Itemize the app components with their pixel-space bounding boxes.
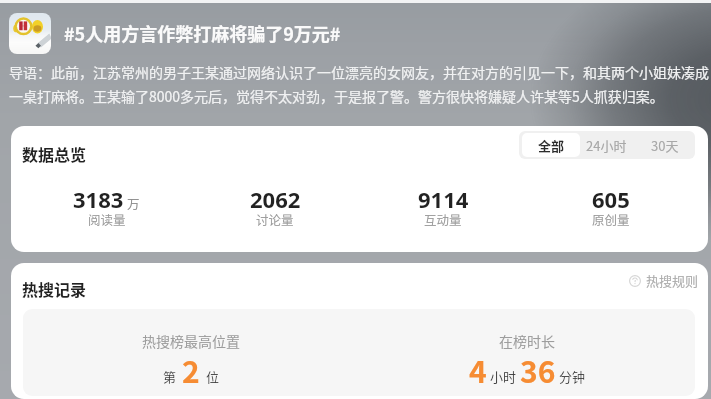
staticText: 605 <box>592 184 630 214</box>
staticText: 第 <box>163 367 177 386</box>
staticText: #5人用方言作弊打麻将骗了9万元# <box>64 20 341 46</box>
staticText: 万 <box>127 194 140 212</box>
button[interactable]: 24小时 <box>580 131 632 159</box>
staticText: 分钟 <box>559 367 586 386</box>
staticText: 在榜时长 <box>499 331 555 351</box>
staticText: 3183 <box>73 184 124 214</box>
button[interactable]: 全部 <box>522 133 580 157</box>
staticText: 30天 <box>651 136 679 155</box>
staticText: 数据总览 <box>22 142 87 165</box>
staticText: 9114 <box>418 184 469 214</box>
staticText: 热搜记录 <box>22 277 87 300</box>
other: 热搜规则说明 <box>629 275 641 287</box>
staticText: 位 <box>206 367 220 386</box>
staticText: 小时 <box>490 367 517 386</box>
staticText: 互动量 <box>424 210 462 228</box>
staticText: 24小时 <box>586 136 627 155</box>
staticText: 原创量 <box>592 210 630 228</box>
staticText: 热搜规则 <box>646 271 699 290</box>
button[interactable]: 30天 <box>639 131 691 159</box>
staticText: 热搜榜最高位置 <box>142 331 240 351</box>
staticText: 阅读量 <box>88 210 126 228</box>
staticText: 讨论量 <box>256 210 294 228</box>
staticText: 4 <box>469 348 487 391</box>
button[interactable]: 热搜规则说明 <box>621 265 708 298</box>
staticText: 36 <box>520 348 556 391</box>
staticText: 全部 <box>538 136 565 155</box>
staticText: 导语：此前，江苏常州的男子王某通过网络认识了一位漂亮的女网友，并在对方的引见一下… <box>9 62 709 106</box>
staticText: 2062 <box>250 184 301 214</box>
staticText: 2 <box>182 348 200 391</box>
